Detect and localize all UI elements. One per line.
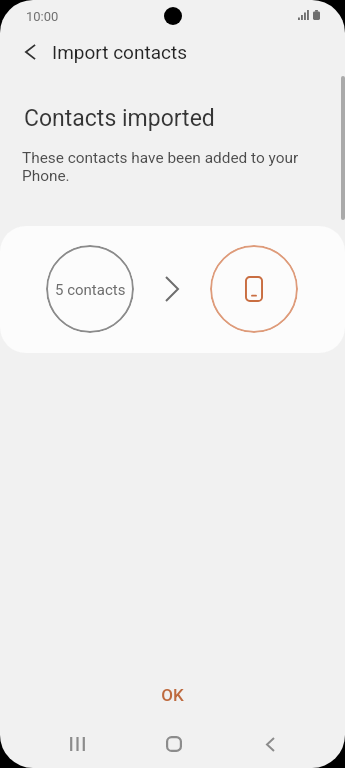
button[interactable]: Recents: [53, 720, 101, 768]
staticText: These contacts have been added to your P…: [22, 149, 312, 185]
staticText: OK: [161, 685, 184, 705]
button[interactable]: OK: [0, 672, 345, 718]
button[interactable]: Back: [246, 720, 294, 768]
button[interactable]: Home: [150, 720, 198, 768]
staticText: 5 contacts: [55, 281, 126, 299]
staticText: Import contacts: [52, 41, 187, 63]
staticText: 10:00: [26, 9, 59, 24]
button[interactable]: Back: [8, 30, 52, 74]
staticText: Contacts imported: [24, 105, 215, 132]
